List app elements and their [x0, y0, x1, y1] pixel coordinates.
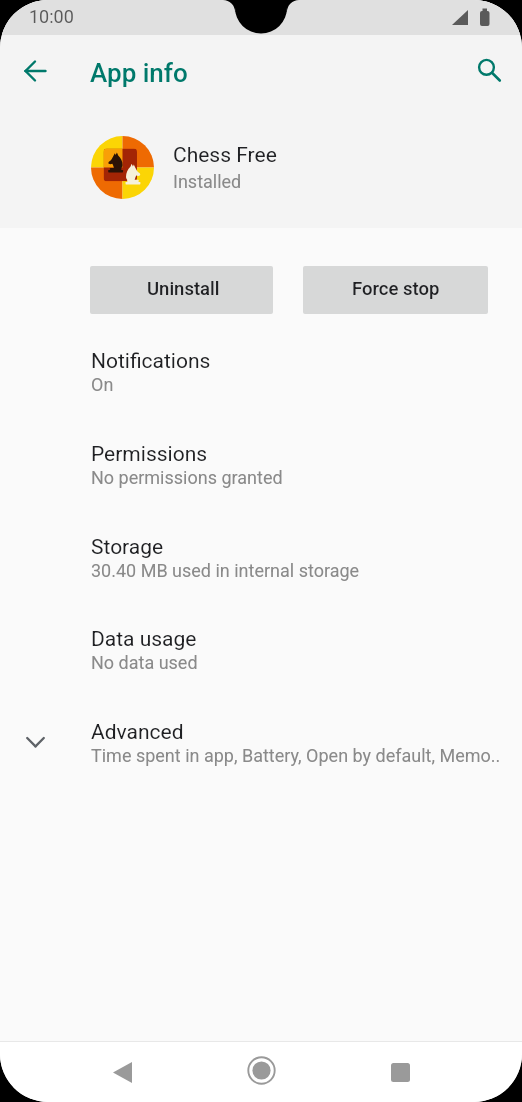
staticText: Data usage	[91, 627, 197, 652]
button[interactable]: Expand advanced	[0, 720, 522, 813]
staticText: No data used	[91, 652, 198, 673]
staticText: App info	[90, 58, 188, 88]
staticText: Notifications	[91, 349, 211, 374]
staticText: 10:00	[29, 6, 74, 27]
button[interactable]: Uninstall	[90, 266, 273, 314]
staticText: 30.40 MB used in internal storage	[91, 560, 360, 581]
staticText: Force stop	[352, 278, 440, 300]
staticText: Time spent in app, Battery, Open by defa…	[91, 745, 501, 766]
button[interactable]: Permissions	[0, 442, 522, 535]
staticText: Advanced	[91, 720, 184, 745]
staticText: No permissions granted	[91, 467, 283, 488]
staticText: Installed	[173, 171, 242, 192]
staticText: Uninstall	[147, 278, 220, 300]
button[interactable]: Back	[82, 1044, 162, 1100]
button[interactable]: Expand advanced	[12, 717, 59, 764]
button[interactable]: Home	[221, 1042, 301, 1098]
button[interactable]: Data usage	[0, 627, 522, 720]
button[interactable]: Force stop	[303, 266, 488, 314]
button[interactable]: Back	[12, 47, 60, 95]
button[interactable]: Search	[464, 47, 512, 95]
button[interactable]: Storage	[0, 535, 522, 628]
button[interactable]: Notifications	[0, 349, 522, 442]
staticText: Chess Free	[173, 143, 277, 168]
staticText: Permissions	[91, 442, 208, 467]
staticText: On	[91, 374, 114, 395]
staticText: Storage	[91, 535, 164, 560]
button[interactable]: Recent apps	[360, 1044, 440, 1100]
